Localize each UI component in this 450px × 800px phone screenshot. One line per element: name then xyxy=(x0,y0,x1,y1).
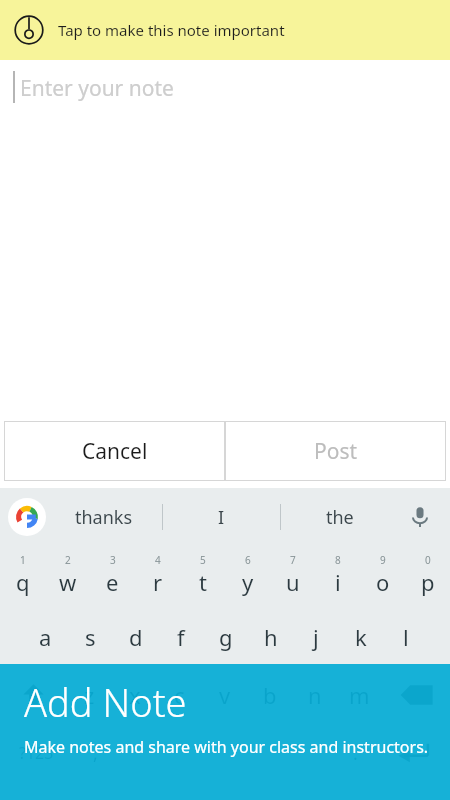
staticText: g xyxy=(219,622,233,652)
staticText: I xyxy=(218,505,225,530)
staticText: . xyxy=(353,741,358,766)
button[interactable]: ?123 xyxy=(2,726,70,780)
button[interactable]: g xyxy=(205,610,246,664)
staticText: thanks xyxy=(75,505,133,530)
button[interactable]: Cancel xyxy=(5,422,224,480)
staticText: 2 xyxy=(65,553,71,567)
button[interactable]: Space xyxy=(125,730,326,776)
button[interactable]: l xyxy=(385,610,426,664)
button[interactable]: s xyxy=(70,610,111,664)
staticText: q xyxy=(16,567,30,597)
button[interactable]: c xyxy=(159,668,200,722)
button[interactable]: 7 xyxy=(272,552,313,606)
button[interactable]: 1 xyxy=(2,552,43,606)
staticText: y xyxy=(242,567,254,597)
button[interactable]: 8 xyxy=(317,552,358,606)
staticText: s xyxy=(85,622,96,652)
button[interactable]: 5 xyxy=(182,552,223,606)
button[interactable]: . xyxy=(334,726,377,780)
staticText: c xyxy=(174,680,185,710)
staticText: o xyxy=(376,567,390,597)
staticText: 0 xyxy=(425,553,431,567)
staticText: b xyxy=(263,680,277,710)
button[interactable]: 9 xyxy=(362,552,403,606)
button[interactable]: Enter xyxy=(381,726,448,780)
staticText: j xyxy=(313,622,319,652)
button[interactable]: Mark important xyxy=(0,0,450,60)
button[interactable]: d xyxy=(115,610,156,664)
staticText: 9 xyxy=(380,553,386,567)
button[interactable]: Post xyxy=(226,422,445,480)
button[interactable]: I xyxy=(163,488,280,546)
button[interactable]: z xyxy=(69,668,110,722)
button[interactable]: 6 xyxy=(227,552,268,606)
staticText: 3 xyxy=(110,553,116,567)
staticText: Add Note xyxy=(24,676,187,728)
staticText: m xyxy=(349,680,370,710)
other: Mark important xyxy=(14,15,44,45)
staticText: d xyxy=(129,622,143,652)
staticText: r xyxy=(153,567,163,597)
staticText: i xyxy=(335,567,341,597)
staticText: w xyxy=(59,567,77,597)
staticText: k xyxy=(355,622,367,652)
staticText: the xyxy=(326,505,354,530)
staticText: p xyxy=(421,567,435,597)
button[interactable]: 2 xyxy=(47,552,88,606)
staticText: u xyxy=(286,567,300,597)
staticText: 1 xyxy=(20,553,26,567)
staticText: Cancel xyxy=(82,437,148,466)
staticText: Tap to make this note important xyxy=(58,20,285,40)
staticText: Post xyxy=(314,437,358,466)
staticText: f xyxy=(177,622,185,652)
staticText: x xyxy=(129,680,141,710)
staticText: a xyxy=(39,622,52,652)
button[interactable]: , xyxy=(74,726,117,780)
staticText: e xyxy=(106,567,119,597)
button[interactable]: Voice input xyxy=(398,488,442,546)
button[interactable]: x xyxy=(114,668,155,722)
staticText: ?123 xyxy=(19,742,54,764)
staticText: l xyxy=(403,622,409,652)
button[interactable]: f xyxy=(160,610,201,664)
button[interactable]: Google xyxy=(8,498,46,536)
button[interactable]: k xyxy=(340,610,381,664)
button[interactable]: a xyxy=(24,610,66,664)
staticText: h xyxy=(264,622,278,652)
button[interactable]: Add Note xyxy=(0,664,450,800)
staticText: Make notes and share with your class and… xyxy=(24,736,429,758)
button[interactable]: 3 xyxy=(92,552,133,606)
button[interactable]: h xyxy=(250,610,291,664)
staticText: , xyxy=(93,741,98,766)
button[interactable]: 0 xyxy=(407,552,448,606)
staticText: 7 xyxy=(290,553,296,567)
staticText: 5 xyxy=(200,553,206,567)
staticText: z xyxy=(84,680,95,710)
button[interactable]: Backspace xyxy=(384,668,448,722)
staticText: 4 xyxy=(155,553,161,567)
staticText: 8 xyxy=(335,553,341,567)
button[interactable]: Shift xyxy=(2,668,65,722)
staticText: 6 xyxy=(245,553,251,567)
staticText: v xyxy=(219,680,231,710)
button[interactable]: j xyxy=(295,610,336,664)
button[interactable]: 4 xyxy=(137,552,178,606)
staticText: t xyxy=(199,567,207,597)
button[interactable]: the xyxy=(281,488,398,546)
staticText: Enter your note xyxy=(20,74,174,103)
button[interactable]: thanks xyxy=(46,488,162,546)
staticText: n xyxy=(308,680,322,710)
